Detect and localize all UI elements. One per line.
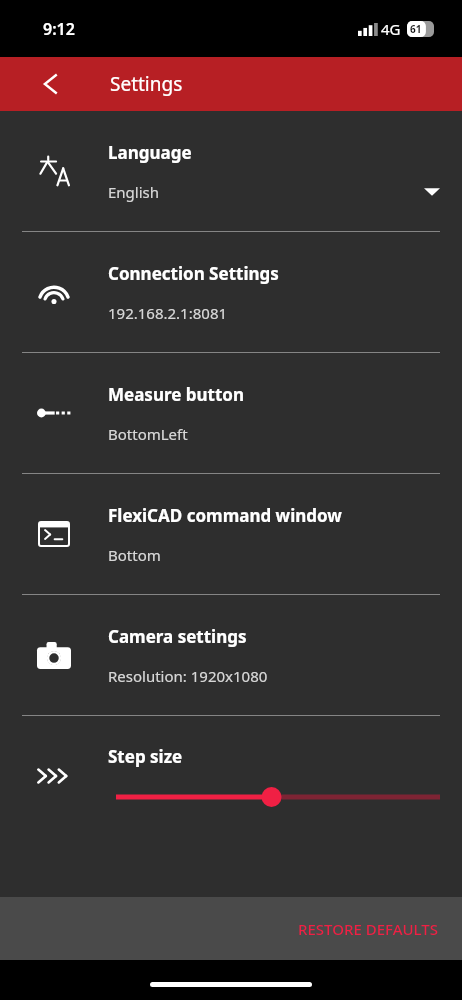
staticText: BottomLeft: [108, 424, 188, 444]
staticText: 192.168.2.1:8081: [108, 303, 228, 323]
button[interactable]: Step size: [0, 716, 462, 836]
staticText: 61: [410, 22, 422, 36]
staticText: Camera settings: [108, 625, 247, 648]
staticText: Settings: [110, 71, 183, 97]
button[interactable]: [108, 786, 440, 808]
staticText: Resolution: 1920x1080: [108, 666, 268, 686]
button[interactable]: Back: [28, 61, 74, 107]
staticText: Measure button: [108, 383, 244, 406]
button[interactable]: RESTORE DEFAULTS: [274, 905, 462, 953]
staticText: Bottom: [108, 545, 161, 565]
button[interactable]: Language: [0, 111, 462, 231]
button[interactable]: FlexiCAD command window: [0, 474, 462, 594]
staticText: 9:12: [43, 18, 75, 40]
staticText: English: [108, 182, 160, 202]
staticText: 4G: [381, 19, 401, 39]
button[interactable]: Connection Settings: [0, 232, 462, 352]
staticText: FlexiCAD command window: [108, 504, 342, 527]
button[interactable]: Measure button: [0, 353, 462, 473]
button[interactable]: Camera settings: [0, 595, 462, 715]
staticText: Step size: [108, 745, 183, 768]
staticText: Connection Settings: [108, 262, 279, 285]
staticText: RESTORE DEFAULTS: [298, 919, 438, 939]
button[interactable]: English: [108, 182, 440, 202]
staticText: Language: [108, 141, 192, 164]
